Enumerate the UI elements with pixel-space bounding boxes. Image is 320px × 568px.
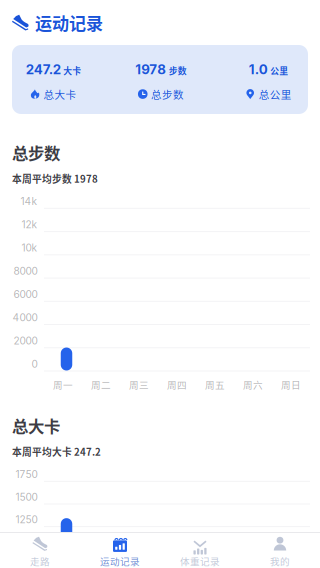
staticText: 本周平均大卡 247.2 (12, 445, 101, 459)
staticText: 10k (21, 242, 37, 254)
staticText: 走路 (30, 554, 50, 568)
staticText: 总步数 (151, 86, 184, 102)
staticText: 周日 (281, 377, 301, 391)
button[interactable]: 走路 (0, 533, 80, 568)
staticText: 2000 (13, 335, 37, 347)
staticText: 我的 (270, 554, 290, 568)
staticText: 12k (21, 218, 37, 231)
staticText: 大卡 (63, 64, 81, 77)
staticText: 8000 (13, 265, 37, 277)
staticText: 体重记录 (180, 554, 220, 568)
staticText: 总公里 (259, 86, 292, 102)
staticText: 周一 (53, 377, 73, 391)
staticText: 本周平均步数 1978 (12, 171, 98, 186)
staticText: 1750 (15, 468, 37, 480)
staticText: 公里 (270, 64, 288, 77)
button[interactable]: 运动记录 (80, 533, 160, 568)
staticText: 1978 (135, 61, 166, 77)
staticText: 周三 (129, 377, 149, 391)
staticText: 6000 (13, 288, 37, 300)
staticText: 周二 (91, 377, 111, 391)
staticText: 运动记录 (100, 554, 140, 568)
staticText: 1.0 (249, 61, 268, 77)
button[interactable]: 运动记录 (0, 0, 320, 45)
staticText: 总大卡 (12, 413, 60, 437)
staticText: 14k (20, 195, 37, 207)
staticText: 4000 (12, 311, 37, 324)
staticText: 0 (31, 358, 37, 370)
staticText: 1250 (15, 513, 37, 526)
staticText: 周六 (243, 377, 263, 391)
staticText: 1000 (15, 536, 37, 548)
staticText: 1500 (15, 491, 37, 503)
button[interactable]: 我的 (240, 533, 320, 568)
staticText: 总步数 (12, 140, 60, 164)
staticText: 周五 (205, 377, 225, 391)
button[interactable]: 体重记录 (160, 533, 240, 568)
staticText: 步数 (169, 64, 187, 77)
staticText: 247.2 (26, 61, 61, 77)
staticText: 周四 (167, 377, 187, 391)
staticText: 运动记录 (35, 10, 103, 35)
staticText: 总大卡 (44, 86, 77, 102)
